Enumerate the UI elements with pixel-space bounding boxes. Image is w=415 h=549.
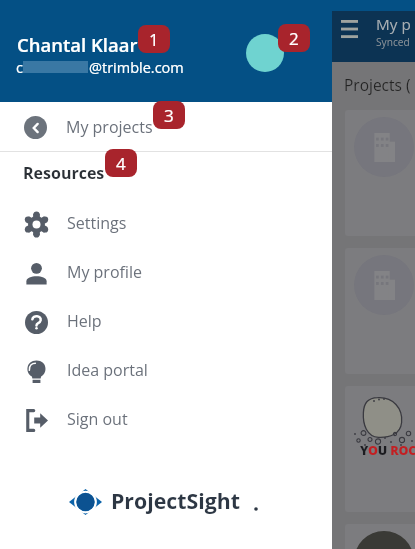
- button[interactable]: [345, 524, 415, 549]
- button[interactable]: Profile avatar: [246, 34, 284, 72]
- staticText: Chantal Klaar: [17, 32, 138, 57]
- staticText: c: [16, 58, 23, 78]
- staticText: YOU ROCK: [360, 442, 415, 459]
- staticText: Idea portal: [67, 359, 148, 381]
- button[interactable]: Settings: [0, 202, 332, 247]
- staticText: My p: [376, 14, 411, 35]
- staticText: 3: [164, 104, 174, 127]
- button[interactable]: My projects: [0, 103, 332, 151]
- staticText: Resources: [23, 162, 105, 184]
- staticText: Help: [67, 310, 102, 332]
- button[interactable]: Sign out: [0, 398, 332, 443]
- button[interactable]: YOU ROCK: [345, 386, 415, 512]
- button[interactable]: My profile: [0, 251, 332, 296]
- button[interactable]: Open navigation menu: [341, 20, 358, 39]
- staticText: My profile: [67, 261, 142, 283]
- staticText: 1: [149, 28, 159, 51]
- staticText: 2: [289, 27, 299, 50]
- button[interactable]: Idea portal: [0, 349, 332, 394]
- staticText: Settings: [67, 212, 127, 234]
- staticText: My projects: [66, 116, 153, 138]
- staticText: Synced: [376, 35, 410, 49]
- button[interactable]: [345, 248, 415, 374]
- staticText: Projects (: [344, 74, 411, 95]
- button[interactable]: Help: [0, 300, 332, 345]
- staticText: @trimble.com: [89, 58, 184, 78]
- staticText: ProjectSight: [111, 486, 241, 515]
- button[interactable]: [345, 110, 415, 236]
- staticText: Sign out: [67, 408, 128, 430]
- staticText: 4: [116, 152, 126, 175]
